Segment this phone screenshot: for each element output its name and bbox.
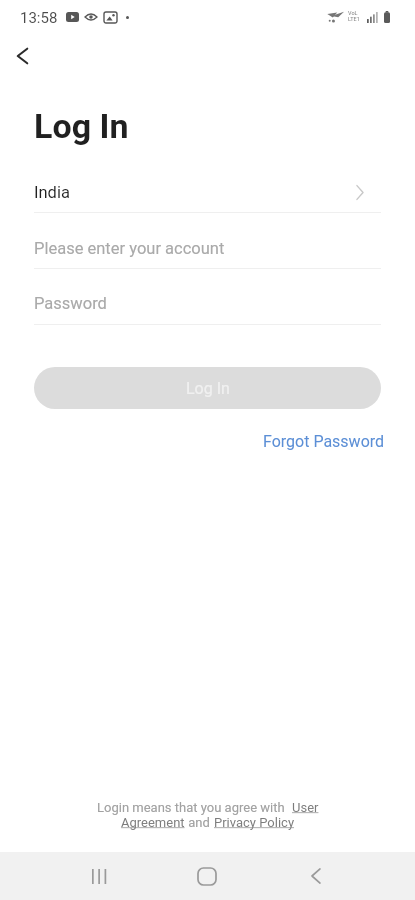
button[interactable]: Back: [0, 34, 44, 78]
button[interactable]: Forgot Password: [261, 430, 387, 453]
staticText: LTE1: [348, 16, 360, 22]
staticText: India: [34, 183, 70, 202]
button[interactable]: Please enter your account: [0, 233, 415, 263]
button[interactable]: Back: [292, 852, 340, 900]
button[interactable]: Password: [0, 288, 415, 318]
button[interactable]: India: [0, 177, 415, 207]
staticText: Password: [34, 294, 107, 313]
staticText: User: [292, 800, 319, 815]
staticText: Login means that you agree with: [97, 800, 292, 815]
button[interactable]: Agreement: [121, 815, 185, 830]
staticText: Log In: [186, 379, 230, 398]
staticText: Privacy Policy: [214, 815, 295, 830]
staticText: VoL: [348, 10, 358, 16]
button[interactable]: User: [292, 800, 319, 815]
button[interactable]: Recent apps: [76, 852, 124, 900]
staticText: Please enter your account: [34, 239, 225, 258]
staticText: and: [185, 815, 214, 830]
button[interactable]: Home: [183, 852, 231, 900]
staticText: 13:58: [20, 9, 58, 27]
button[interactable]: Privacy Policy: [214, 815, 295, 830]
staticText: Agreement: [121, 815, 185, 830]
staticText: Log In: [34, 106, 129, 146]
staticText: Forgot Password: [263, 432, 385, 451]
button[interactable]: Log In: [34, 367, 381, 409]
